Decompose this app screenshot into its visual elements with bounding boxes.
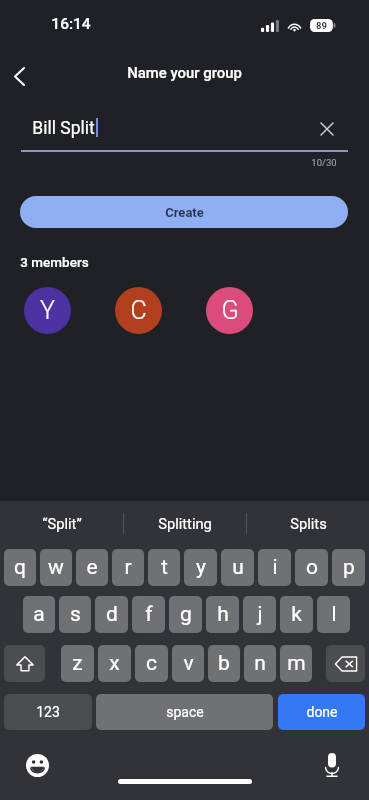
staticText: G — [221, 296, 239, 325]
button[interactable]: b — [208, 645, 240, 682]
staticText: C — [130, 296, 147, 325]
staticText: t — [161, 555, 168, 580]
staticText: u — [232, 555, 244, 580]
button[interactable]: l — [317, 596, 350, 633]
button[interactable]: i — [258, 549, 291, 586]
staticText: f — [145, 602, 153, 627]
staticText: m — [287, 651, 306, 676]
button[interactable]: “Split” — [0, 501, 123, 545]
button[interactable]: t — [148, 549, 180, 586]
button[interactable]: Backspace — [326, 645, 365, 682]
button[interactable]: q — [4, 549, 36, 586]
button[interactable]: g — [169, 596, 202, 633]
button[interactable]: Y — [24, 287, 71, 334]
button[interactable]: o — [295, 549, 328, 586]
button[interactable]: x — [98, 645, 131, 682]
button[interactable]: v — [172, 645, 204, 682]
button[interactable]: d — [95, 596, 128, 633]
staticText: c — [146, 651, 157, 676]
button[interactable]: Emoji — [23, 751, 51, 779]
staticText: s — [70, 602, 81, 627]
staticText: Create — [165, 205, 204, 220]
button[interactable]: f — [132, 596, 165, 633]
button[interactable]: C — [115, 287, 162, 334]
staticText: o — [306, 555, 318, 580]
button[interactable]: j — [243, 596, 276, 633]
button[interactable]: y — [184, 549, 217, 586]
button[interactable]: s — [59, 596, 91, 633]
staticText: Splits — [290, 515, 327, 532]
button[interactable]: Voice input — [318, 751, 346, 779]
staticText: 3 members — [20, 254, 89, 270]
staticText: Y — [40, 296, 55, 325]
button[interactable]: k — [280, 596, 313, 633]
button[interactable]: w — [40, 549, 72, 586]
button[interactable]: Shift — [4, 645, 45, 682]
staticText: p — [343, 555, 355, 580]
staticText: a — [33, 602, 45, 627]
button[interactable]: Create — [20, 196, 348, 228]
button[interactable]: Splits — [247, 501, 369, 545]
staticText: l — [331, 602, 337, 627]
staticText: j — [257, 602, 263, 627]
button[interactable]: h — [206, 596, 239, 633]
button[interactable]: Clear text — [312, 114, 342, 144]
button[interactable]: Splitting — [124, 501, 246, 545]
staticText: done — [306, 704, 338, 720]
button[interactable]: a — [23, 596, 55, 633]
staticText: space — [166, 704, 204, 720]
staticText: y — [196, 555, 206, 580]
staticText: n — [254, 651, 266, 676]
staticText: Name your group — [127, 64, 242, 81]
staticText: d — [106, 602, 118, 627]
button[interactable]: space — [96, 694, 273, 730]
staticText: “Split” — [42, 515, 82, 532]
button[interactable]: e — [76, 549, 108, 586]
staticText: i — [272, 555, 278, 580]
button[interactable]: p — [332, 549, 365, 586]
staticText: k — [291, 602, 302, 627]
button[interactable]: n — [244, 645, 276, 682]
staticText: q — [14, 555, 26, 580]
staticText: h — [217, 602, 229, 627]
staticText: z — [72, 651, 83, 676]
button[interactable]: z — [61, 645, 94, 682]
staticText: Bill Split — [32, 118, 95, 139]
button[interactable]: 123 — [4, 694, 92, 730]
staticText: e — [86, 555, 98, 580]
staticText: 123 — [36, 704, 60, 720]
button[interactable]: G — [206, 287, 253, 334]
staticText: w — [48, 555, 64, 580]
button[interactable]: Back — [1, 50, 37, 94]
button[interactable]: u — [221, 549, 254, 586]
button[interactable]: r — [112, 549, 144, 586]
button[interactable]: c — [135, 645, 168, 682]
staticText: 89 — [316, 20, 327, 31]
staticText: x — [109, 651, 120, 676]
button[interactable]: m — [280, 645, 312, 682]
button[interactable]: done — [278, 694, 365, 730]
staticText: b — [218, 651, 230, 676]
staticText: r — [124, 555, 132, 580]
staticText: Splitting — [158, 515, 212, 532]
staticText: v — [183, 651, 194, 676]
staticText: 16:14 — [51, 15, 91, 33]
staticText: g — [180, 602, 192, 627]
staticText: 10/30 — [311, 157, 337, 168]
